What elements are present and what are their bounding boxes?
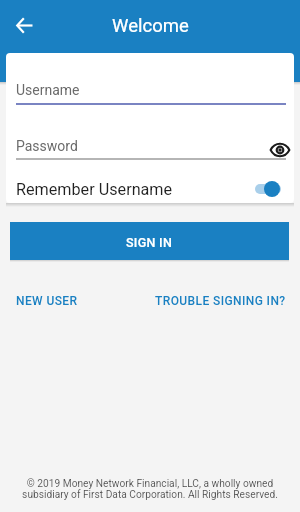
staticText: TROUBLE SIGNING IN? xyxy=(155,294,286,308)
staticText: Password xyxy=(16,138,78,154)
button[interactable]: TROUBLE SIGNING IN? xyxy=(155,294,286,308)
button[interactable]: Show password xyxy=(268,138,292,162)
button[interactable]: Remember Username xyxy=(6,175,294,203)
button[interactable]: NEW USER xyxy=(16,294,78,308)
staticText: NEW USER xyxy=(16,294,78,308)
staticText: Remember Username xyxy=(16,180,173,199)
staticText: Welcome xyxy=(112,15,189,37)
staticText: Username xyxy=(16,82,80,98)
staticText: © 2019 Money Network Financial, LLC, a w… xyxy=(0,478,300,501)
button[interactable]: Back xyxy=(10,11,38,39)
button[interactable]: SIGN IN xyxy=(10,222,289,260)
staticText: SIGN IN xyxy=(126,235,173,250)
